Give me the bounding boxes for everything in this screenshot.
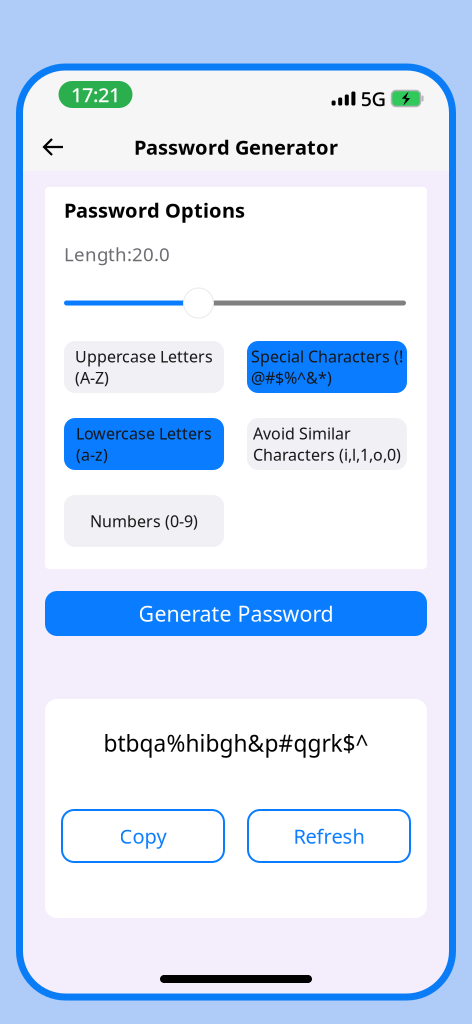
staticText: Password Generator: [134, 134, 338, 160]
staticText: Refresh: [293, 823, 364, 849]
button[interactable]: Numbers (0-9): [64, 495, 224, 547]
button[interactable]: Uppercase Letters (A-Z): [64, 341, 224, 393]
button[interactable]: Avoid Similar Characters (i,l,1,o,0): [247, 418, 407, 470]
button[interactable]: Generate Password: [45, 591, 427, 636]
staticText: 17:21: [71, 81, 120, 108]
button[interactable]: Back: [31, 127, 75, 167]
button[interactable]: Special Characters (!@#$%^&*): [247, 341, 407, 393]
staticText: Avoid Similar Characters (i,l,1,o,0): [253, 423, 401, 465]
staticText: btbqa%hibgh&p#qgrk$^: [103, 728, 368, 758]
staticText: Copy: [119, 823, 166, 849]
button[interactable]: Copy: [62, 810, 224, 862]
staticText: Numbers (0-9): [90, 510, 198, 532]
staticText: Password Options: [64, 197, 245, 223]
button[interactable]: Refresh: [248, 810, 410, 862]
staticText: Uppercase Letters (A-Z): [75, 346, 213, 388]
staticText: Lowercase Letters (a-z): [76, 423, 212, 465]
staticText: Generate Password: [138, 599, 333, 628]
button[interactable]: Lowercase Letters (a-z): [64, 418, 224, 470]
staticText: 5G: [360, 85, 386, 112]
staticText: Special Characters (!@#$%^&*): [251, 346, 403, 388]
staticText: Length:20.0: [64, 242, 170, 266]
